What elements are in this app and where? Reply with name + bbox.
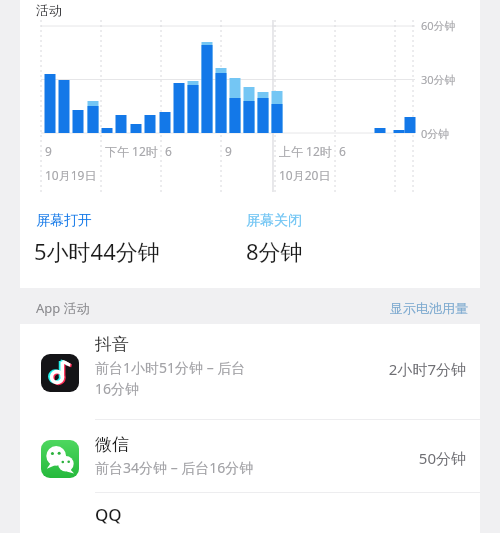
staticText: 屏幕打开 (36, 212, 92, 230)
staticText: 上午 12时 (279, 143, 332, 159)
button[interactable]: QQ (20, 493, 480, 533)
other: 微信 app icon (41, 440, 79, 478)
other: 抖音 app icon (41, 354, 79, 392)
staticText: 屏幕关闭 (246, 212, 302, 230)
staticText: 活动 (36, 2, 62, 18)
staticText: 9 (225, 143, 232, 159)
button[interactable]: 显示电池用量 (390, 300, 468, 316)
staticText: 8分钟 (246, 236, 303, 266)
staticText: 显示电池用量 (390, 300, 468, 316)
staticText: 5小时44分钟 (34, 236, 160, 266)
staticText: 10月19日 (45, 167, 97, 183)
staticText: 前台1小时51分钟 – 后台 (95, 358, 246, 377)
staticText: 6 (165, 143, 172, 159)
staticText: 抖音 (95, 334, 129, 355)
staticText: 前台34分钟 – 后台16分钟 (95, 458, 254, 477)
staticText: 9 (45, 143, 52, 159)
staticText: 16分钟 (95, 379, 140, 398)
staticText: 微信 (95, 434, 129, 455)
staticText: 50分钟 (418, 448, 466, 468)
staticText: App 活动 (36, 299, 90, 317)
staticText: 6 (339, 143, 346, 159)
staticText: 60分钟 (421, 18, 456, 33)
staticText: 2小时7分钟 (388, 359, 466, 379)
staticText: 30分钟 (421, 72, 456, 87)
staticText: 0分钟 (421, 126, 450, 141)
button[interactable]: 抖音 app icon (20, 324, 480, 419)
staticText: QQ (95, 503, 122, 526)
button[interactable]: 微信 app icon (20, 420, 480, 492)
staticText: 下午 12时 (105, 143, 158, 159)
staticText: 10月20日 (279, 167, 331, 183)
